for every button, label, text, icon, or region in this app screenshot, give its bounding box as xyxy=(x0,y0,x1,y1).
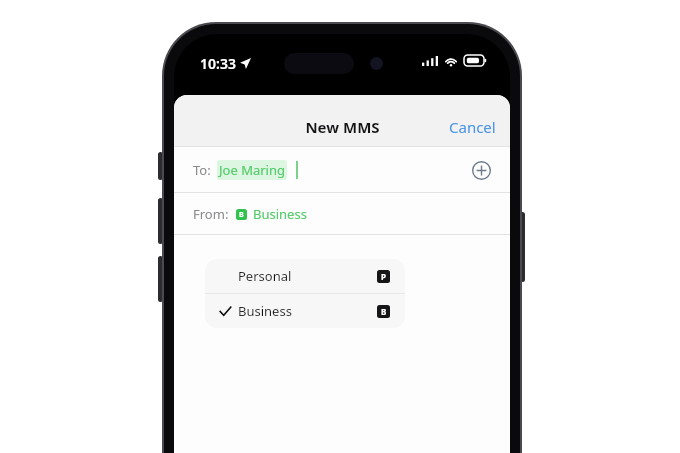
staticText: Personal xyxy=(238,267,292,285)
staticText: 10:33 xyxy=(200,54,236,73)
staticText: New MMS xyxy=(305,117,380,137)
button[interactable]: From: xyxy=(174,193,510,234)
button[interactable]: To: xyxy=(174,147,510,192)
staticText: P xyxy=(381,271,386,282)
staticText: Cancel xyxy=(449,117,496,137)
staticText: B xyxy=(239,210,244,220)
staticText: From: xyxy=(193,205,229,223)
button[interactable]: Add contact xyxy=(466,155,496,185)
staticText: Joe Maring xyxy=(219,161,285,179)
button[interactable]: Business xyxy=(205,294,405,328)
staticText: Business xyxy=(238,302,292,320)
button[interactable]: Personal xyxy=(205,259,405,293)
staticText: Business xyxy=(253,205,307,223)
staticText: To: xyxy=(193,161,211,179)
staticText: B xyxy=(381,306,387,317)
button[interactable]: Cancel xyxy=(435,109,510,145)
